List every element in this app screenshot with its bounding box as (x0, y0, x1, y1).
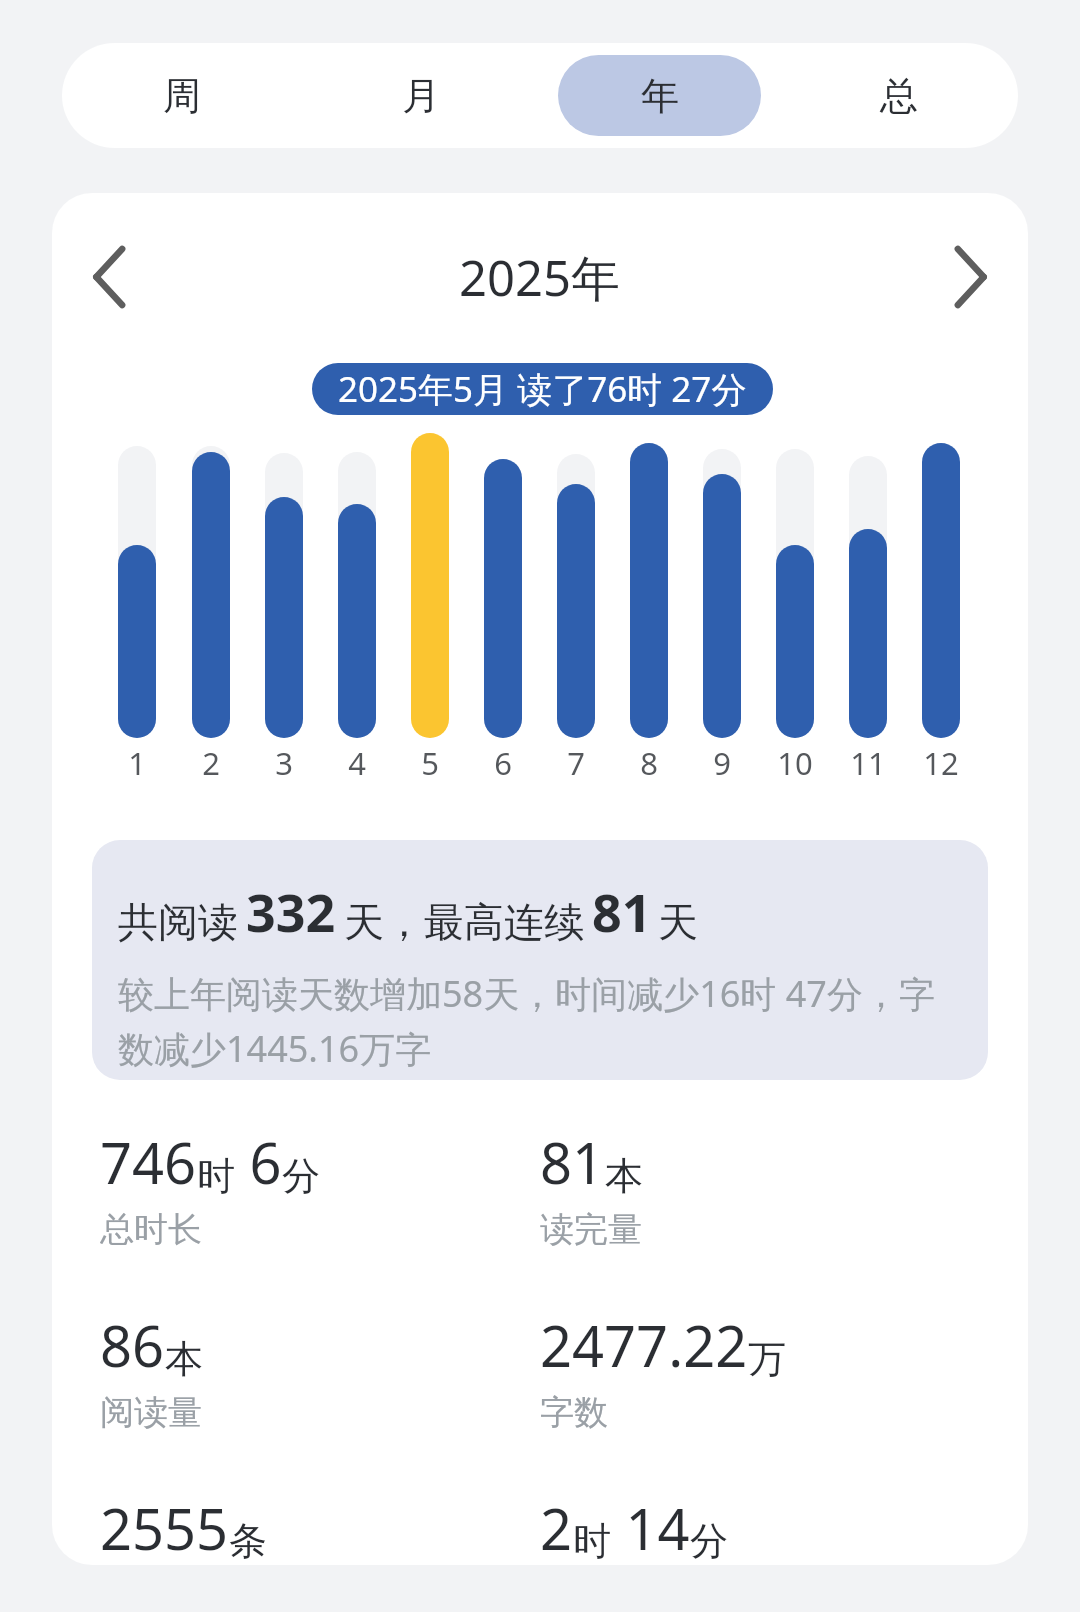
button[interactable]: 2025年5月 读了76时 27分 (312, 363, 773, 415)
staticText: 81 (592, 876, 652, 947)
button[interactable] (100, 430, 174, 738)
staticText: 天，最高连续 (344, 897, 584, 947)
staticText: 本 (605, 1152, 643, 1200)
button[interactable]: 2477.22 (540, 1307, 786, 1434)
staticText: 字数 (540, 1391, 608, 1434)
staticText: 86 (100, 1307, 165, 1383)
staticText: 11 (850, 742, 886, 784)
button[interactable] (904, 430, 977, 738)
staticText: 746 (100, 1124, 197, 1200)
button[interactable] (393, 430, 466, 738)
staticText: 2 (540, 1490, 573, 1565)
staticText: 1 (128, 742, 146, 784)
button[interactable] (247, 430, 320, 738)
staticText: 分 (690, 1517, 728, 1565)
staticText: 2477.22 (540, 1307, 748, 1383)
staticText: 周 (163, 72, 201, 120)
button[interactable]: 86 (100, 1307, 203, 1434)
staticText: 2555 (100, 1490, 229, 1565)
staticText: 总 (880, 72, 918, 120)
button[interactable]: 2555 (100, 1490, 267, 1565)
staticText: 12 (923, 742, 959, 784)
button[interactable] (758, 430, 831, 738)
button[interactable]: 月 (319, 55, 522, 136)
button[interactable] (320, 430, 393, 738)
staticText: 天 (658, 897, 698, 947)
staticText: 总时长 (100, 1208, 202, 1251)
staticText: 5 (421, 742, 439, 784)
button[interactable]: 2 (540, 1490, 728, 1565)
staticText: 6 (235, 1124, 282, 1200)
staticText: 332 (246, 876, 336, 947)
staticText: 2025年 (459, 244, 621, 311)
staticText: 共阅读 (118, 897, 238, 947)
staticText: 10 (777, 742, 813, 784)
button[interactable]: 周 (80, 55, 283, 136)
staticText: 月 (402, 72, 440, 120)
button[interactable]: Previous year (70, 237, 150, 317)
staticText: 14 (611, 1490, 690, 1565)
staticText: 较上年阅读天数增加58天，时间减少16时 47分，字数减少1445.16万字 (118, 969, 966, 1073)
staticText: 9 (713, 742, 731, 784)
button[interactable]: 年 (558, 55, 761, 136)
staticText: 年 (641, 72, 679, 120)
staticText: 万 (748, 1335, 786, 1383)
button[interactable]: 共阅读 (92, 840, 988, 1080)
button[interactable] (685, 430, 758, 738)
staticText: 条 (229, 1517, 267, 1565)
staticText: 阅读量 (100, 1391, 202, 1434)
staticText: 3 (275, 742, 293, 784)
button[interactable] (174, 430, 247, 738)
button[interactable] (466, 430, 539, 738)
button[interactable]: 746 (100, 1124, 320, 1251)
staticText: 读完量 (540, 1208, 642, 1251)
staticText: 分 (282, 1152, 320, 1200)
staticText: 时 (573, 1517, 611, 1565)
staticText: 8 (640, 742, 658, 784)
staticText: 2025年5月 读了76时 27分 (338, 365, 747, 413)
staticText: 时 (197, 1152, 235, 1200)
staticText: 4 (348, 742, 366, 784)
button[interactable]: 81 (540, 1124, 643, 1251)
button[interactable] (831, 430, 904, 738)
staticText: 7 (567, 742, 585, 784)
staticText: 81 (540, 1124, 605, 1200)
staticText: 本 (165, 1335, 203, 1383)
staticText: 6 (494, 742, 512, 784)
staticText: 2 (202, 742, 220, 784)
button[interactable]: 总 (797, 55, 1000, 136)
button[interactable] (539, 430, 612, 738)
button[interactable]: Next year (930, 237, 1010, 317)
button[interactable] (612, 430, 685, 738)
